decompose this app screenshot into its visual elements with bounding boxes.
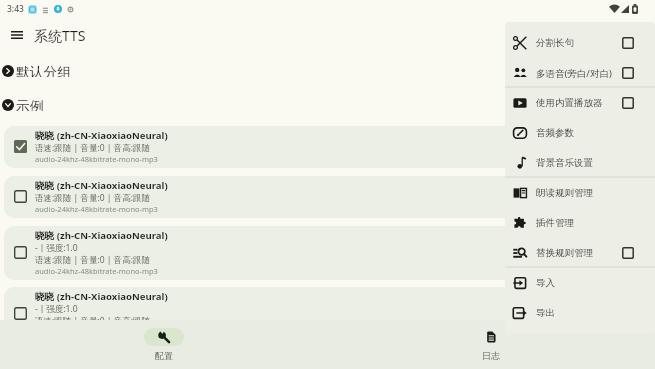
staticText: 晓晓 (zh-CN-XiaoxiaoNeural) xyxy=(35,129,168,142)
staticText: -丨强度:1.0 xyxy=(35,303,78,315)
staticText: 语速:跟随 | 音量:0 | 音高:跟随 xyxy=(35,254,150,266)
staticText: 3:43 xyxy=(7,3,24,15)
button[interactable]: Navigation drawer xyxy=(5,23,29,47)
staticText: 配置 xyxy=(155,350,173,361)
button[interactable]: 多语音(旁白/对白) xyxy=(505,58,655,88)
staticText: audio-24khz-48kbitrate-mono-mp3 xyxy=(35,154,158,164)
staticText: 日志 xyxy=(482,350,500,361)
staticText: 晓晓 (zh-CN-XiaoxiaoNeural) xyxy=(35,179,168,192)
staticText: 示例 xyxy=(16,98,44,111)
button[interactable]: 配置 xyxy=(104,320,224,369)
staticText: 分割长句 xyxy=(536,37,574,49)
staticText: 音频参数 xyxy=(536,127,574,139)
staticText: 晓晓 (zh-CN-XiaoxiaoNeural) xyxy=(35,290,168,303)
staticText: 朗读规则管理 xyxy=(536,187,593,199)
button[interactable]: 导出 xyxy=(505,298,655,328)
button[interactable]: 插件管理 xyxy=(505,208,655,238)
button[interactable]: 默认分组 xyxy=(0,64,655,77)
staticText: 语速:跟随 | 音量:0 | 音高:跟随 xyxy=(35,142,150,154)
staticText: audio-24khz-48kbitrate-mono-mp3 xyxy=(35,204,158,214)
staticText: -丨强度:1.0 xyxy=(35,242,78,254)
staticText: 背景音乐设置 xyxy=(536,157,593,169)
button[interactable]: 音频参数 xyxy=(505,118,655,148)
staticText: audio-24khz-48kbitrate-mono-mp3 xyxy=(35,327,158,337)
staticText: 语速:跟随 | 音量:0 | 音高:跟随 xyxy=(35,315,150,327)
button[interactable]: 背景音乐设置 xyxy=(505,148,655,178)
button[interactable]: Select voice xyxy=(4,176,651,218)
staticText: 替换规则管理 xyxy=(536,247,593,259)
button[interactable]: Select voice xyxy=(13,139,28,154)
staticText: 插件管理 xyxy=(536,217,574,229)
button[interactable]: 示例 xyxy=(0,98,655,111)
staticText: 导入 xyxy=(536,277,555,289)
button[interactable]: Select voice xyxy=(13,306,28,321)
staticText: 导出 xyxy=(536,307,555,319)
staticText: 晓晓 (zh-CN-XiaoxiaoNeural) xyxy=(35,229,168,242)
button[interactable]: Select voice xyxy=(4,126,651,168)
button[interactable]: Select voice xyxy=(13,245,28,260)
staticText: audio-24khz-48kbitrate-mono-mp3 xyxy=(35,266,158,276)
button[interactable]: 朗读规则管理 xyxy=(505,178,655,208)
button[interactable]: 导入 xyxy=(505,268,655,298)
staticText: 默认分组 xyxy=(16,64,72,77)
button[interactable]: 日志 xyxy=(431,320,551,369)
staticText: 多语音(旁白/对白) xyxy=(536,67,612,80)
button[interactable]: 分割长句 xyxy=(505,28,655,58)
button[interactable]: Select voice xyxy=(4,226,651,280)
button[interactable]: 替换规则管理 xyxy=(505,238,655,268)
button[interactable]: Select voice xyxy=(13,189,28,204)
staticText: 系统TTS xyxy=(34,26,86,45)
button[interactable]: 使用内置播放器 xyxy=(505,88,655,118)
staticText: 语速:跟随 | 音量:0 | 音高:跟随 xyxy=(35,192,150,204)
button[interactable]: Select voice xyxy=(4,287,651,341)
staticText: 使用内置播放器 xyxy=(536,97,603,109)
